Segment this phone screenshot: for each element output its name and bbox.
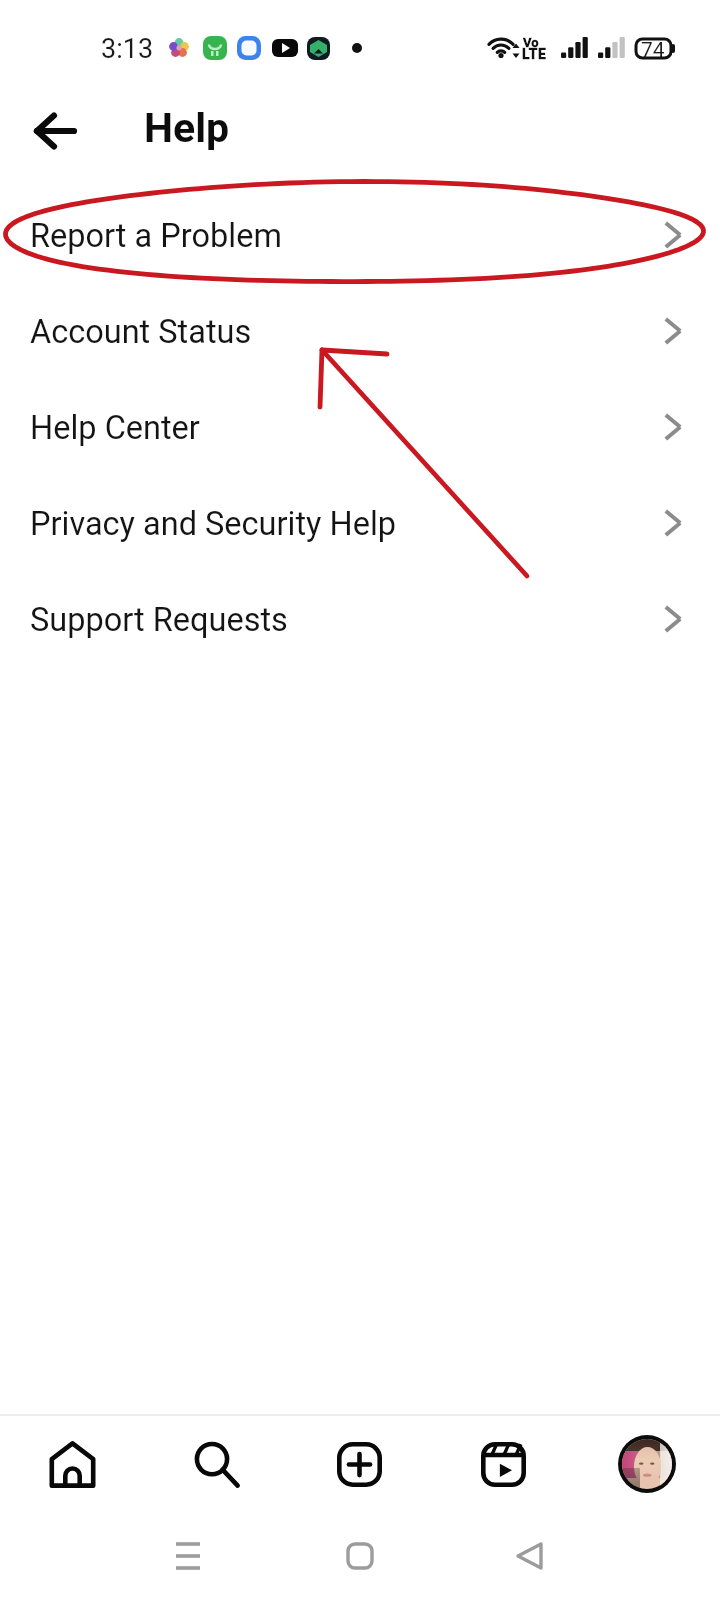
button[interactable]: Account Status: [0, 286, 720, 382]
staticText: Support Requests: [30, 601, 288, 639]
staticText: 3:13: [101, 33, 154, 65]
button[interactable]: Reels: [457, 1418, 549, 1510]
button[interactable]: Home: [320, 1516, 400, 1596]
staticText: Account Status: [30, 313, 252, 351]
button[interactable]: Back: [491, 1516, 571, 1596]
staticText: Vo: [523, 35, 539, 50]
button[interactable]: Recents: [148, 1516, 228, 1596]
button[interactable]: Home: [26, 1418, 118, 1510]
staticText: Help: [144, 104, 230, 152]
staticText: LTE: [522, 46, 547, 62]
button[interactable]: Back: [14, 91, 96, 173]
staticText: 74: [641, 38, 665, 63]
button[interactable]: Search: [170, 1418, 262, 1510]
staticText: Privacy and Security Help: [30, 505, 397, 543]
button[interactable]: Privacy and Security Help: [0, 478, 720, 574]
button[interactable]: Report a Problem: [0, 190, 720, 286]
button[interactable]: Help Center: [0, 382, 720, 478]
button[interactable]: Support Requests: [0, 574, 720, 670]
button[interactable]: Profile: [601, 1418, 693, 1510]
staticText: Help Center: [30, 409, 200, 447]
staticText: Report a Problem: [30, 217, 282, 255]
button[interactable]: Create: [313, 1418, 405, 1510]
